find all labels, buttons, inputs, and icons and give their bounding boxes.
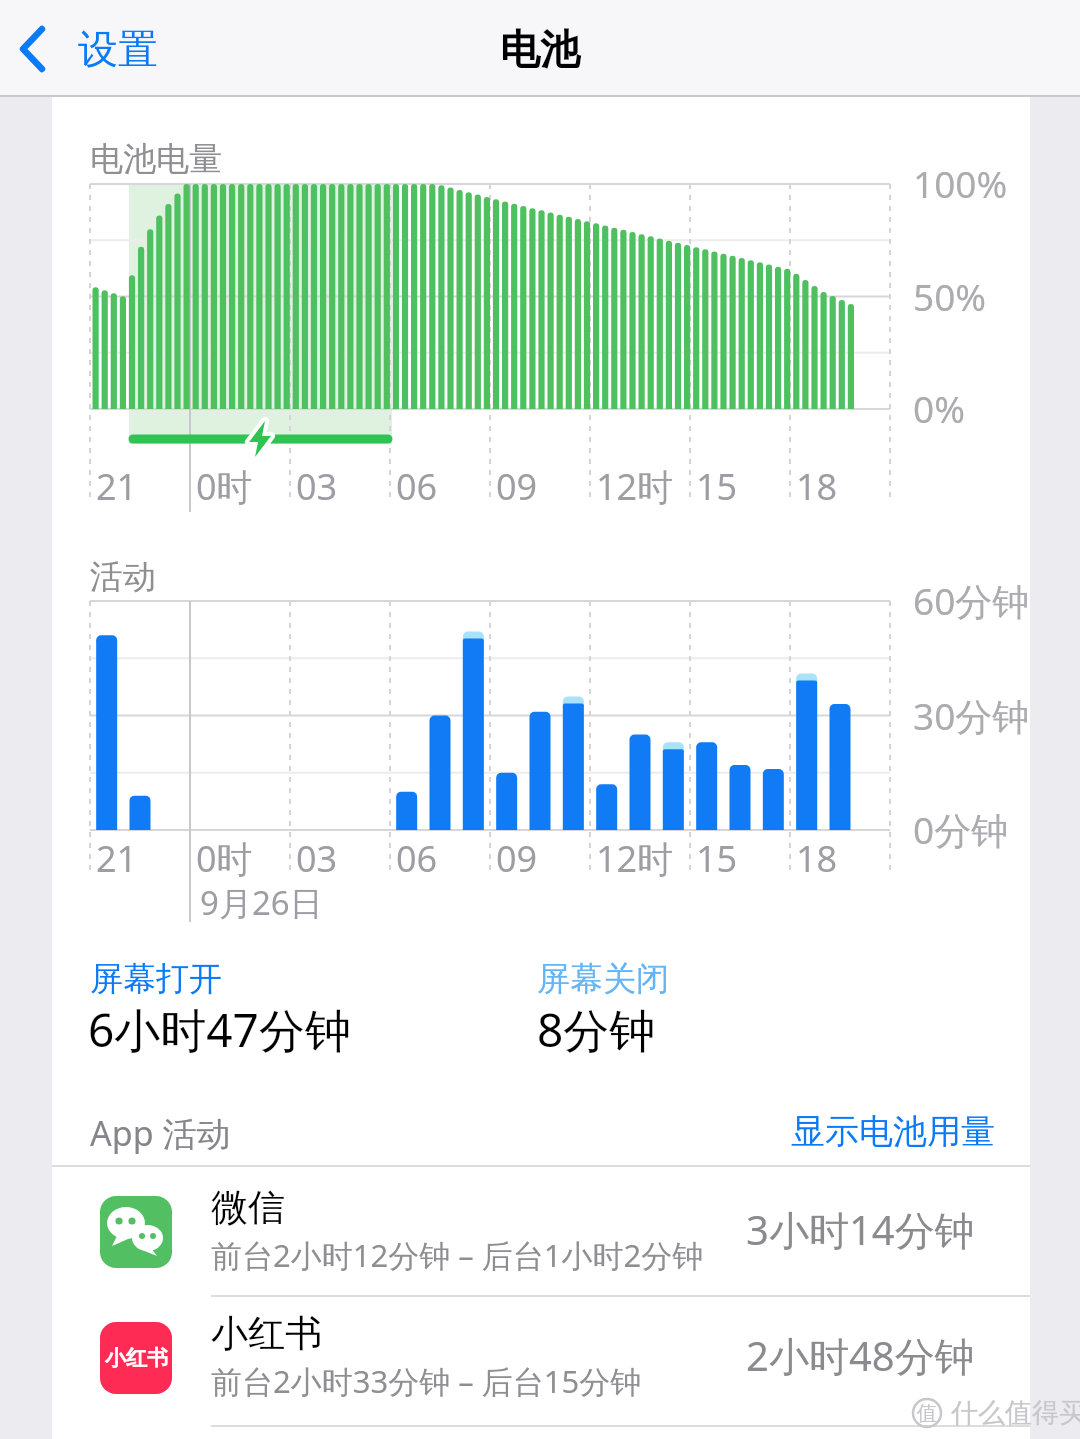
button[interactable]: 设置: [18, 24, 158, 74]
staticText: 18: [796, 834, 838, 883]
staticText: 屏幕打开: [90, 958, 222, 1000]
staticText: 9月26日: [200, 880, 323, 925]
staticText: 电池: [500, 24, 580, 74]
staticText: 06: [396, 834, 438, 883]
staticText: 活动: [90, 556, 156, 598]
staticText: 21: [96, 462, 138, 511]
staticText: 小红书: [105, 1345, 168, 1371]
staticText: 小红书: [211, 1310, 322, 1357]
staticText: 显示电池用量: [791, 1110, 995, 1153]
staticText: 03: [296, 462, 338, 511]
staticText: 什么值得买: [951, 1396, 1080, 1430]
staticText: 12时: [596, 834, 674, 883]
staticText: 微信: [211, 1184, 285, 1231]
staticText: 60分钟: [913, 575, 1030, 626]
staticText: 09: [496, 462, 538, 511]
staticText: 设置: [78, 24, 158, 74]
staticText: App 活动: [90, 1110, 231, 1156]
staticText: 09: [496, 834, 538, 883]
staticText: 15: [696, 834, 738, 883]
staticText: 8分钟: [537, 998, 656, 1061]
staticText: 03: [296, 834, 338, 883]
staticText: 0时: [196, 834, 253, 883]
staticText: 前台2小时12分钟 – 后台1小时2分钟: [211, 1234, 704, 1276]
staticText: 屏幕关闭: [537, 958, 669, 1000]
button[interactable]: 微信: [52, 1166, 1030, 1295]
staticText: 18: [796, 462, 838, 511]
staticText: 前台2小时33分钟 – 后台15分钟: [211, 1360, 642, 1402]
staticText: 06: [396, 462, 438, 511]
staticText: 0%: [913, 383, 965, 433]
staticText: 电池电量: [90, 138, 222, 180]
staticText: 0分钟: [913, 804, 1009, 855]
staticText: 12时: [596, 462, 674, 511]
staticText: 0时: [196, 462, 253, 511]
staticText: 2小时48分钟: [746, 1328, 975, 1383]
staticText: 50%: [913, 271, 987, 321]
button[interactable]: 小红书: [52, 1296, 1030, 1439]
staticText: 3小时14分钟: [746, 1202, 975, 1257]
staticText: 6小时47分钟: [88, 998, 351, 1061]
staticText: 21: [96, 834, 138, 883]
staticText: 100%: [913, 158, 1008, 208]
button[interactable]: 显示电池用量: [695, 1110, 995, 1153]
staticText: 30分钟: [913, 690, 1030, 741]
staticText: 值: [917, 1401, 937, 1426]
staticText: 15: [696, 462, 738, 511]
